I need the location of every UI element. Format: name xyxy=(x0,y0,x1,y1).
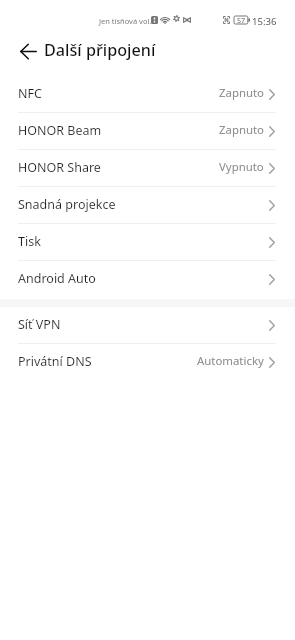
staticText: Automaticky xyxy=(197,353,264,369)
button[interactable]: Privátní DNS xyxy=(0,344,295,381)
staticText: Další připojení xyxy=(44,39,156,61)
button[interactable]: HONOR Beam xyxy=(0,113,295,150)
staticText: 15:36 xyxy=(252,15,277,28)
staticText: Privátní DNS xyxy=(18,353,92,370)
button[interactable]: HONOR Share xyxy=(0,150,295,187)
button[interactable]: Android Auto xyxy=(0,261,295,298)
button[interactable]: Snadná projekce xyxy=(0,187,295,224)
staticText: NFC xyxy=(18,85,42,102)
staticText: 57 xyxy=(237,15,246,23)
button[interactable]: Síť VPN xyxy=(0,307,295,344)
staticText: HONOR Beam xyxy=(18,122,102,139)
button[interactable]: Tisk xyxy=(0,224,295,261)
staticText: Vypnuto xyxy=(219,159,264,175)
button[interactable]: NFC xyxy=(0,76,295,113)
button[interactable]: Back xyxy=(9,36,47,66)
staticText: HONOR Share xyxy=(18,159,101,176)
staticText: Android Auto xyxy=(18,270,96,287)
staticText: Tisk xyxy=(18,233,41,250)
staticText: Síť VPN xyxy=(18,316,61,333)
staticText: Jen tísňová vol... xyxy=(99,16,156,26)
staticText: Zapnuto xyxy=(219,122,264,138)
staticText: Snadná projekce xyxy=(18,196,116,213)
staticText: Zapnuto xyxy=(219,85,264,101)
